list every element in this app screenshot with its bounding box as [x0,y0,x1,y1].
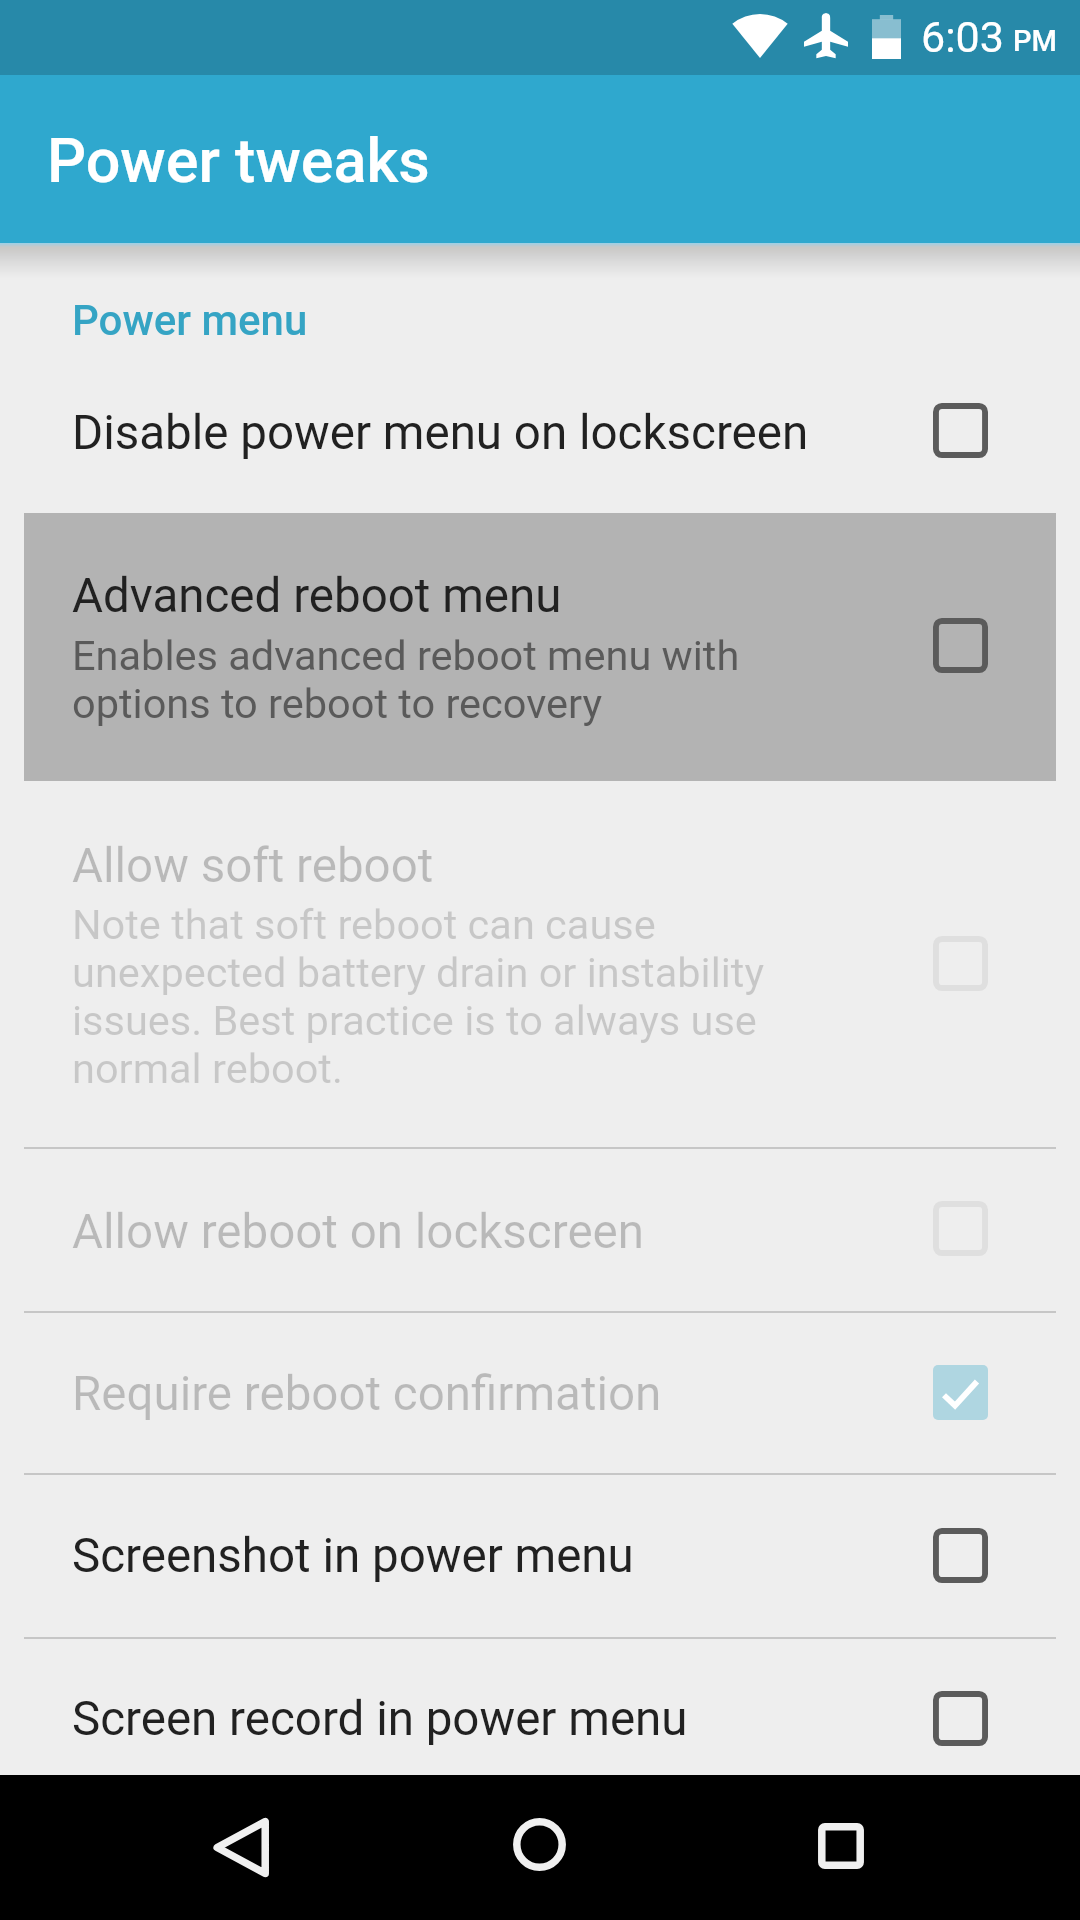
button[interactable] [0,1313,1080,1473]
button[interactable]: Home [473,1772,605,1917]
button[interactable]: Unchecked [912,915,1008,1011]
button[interactable]: Back [176,1775,308,1920]
button[interactable] [0,1639,1080,1785]
staticText: Disable power menu on lockscreen [72,405,932,461]
button[interactable] [0,790,1080,1145]
staticText: PM [1013,24,1057,58]
staticText: Allow soft reboot [72,838,932,894]
staticText: Note that soft reboot can cause unexpect… [72,901,932,1093]
staticText: Screenshot in power menu [72,1528,932,1584]
button[interactable]: Unchecked [912,1180,1008,1276]
button[interactable]: Unchecked [912,1670,1008,1766]
button[interactable]: Recent apps [775,1773,907,1918]
staticText: Enables advanced reboot menu with option… [72,632,932,728]
staticText: Power menu [72,296,308,345]
button[interactable]: Unchecked [912,1507,1008,1603]
button[interactable]: Unchecked [912,382,1008,478]
button[interactable]: Checked [912,1344,1008,1440]
button[interactable] [0,1149,1080,1311]
staticText: Require reboot confirmation [72,1366,932,1422]
button[interactable] [0,1475,1080,1637]
staticText: 6:03 [921,12,1004,62]
staticText: Advanced reboot menu [72,568,932,624]
button[interactable] [0,513,1080,781]
staticText: Allow reboot on lockscreen [72,1204,932,1260]
button[interactable] [0,366,1080,511]
button[interactable]: Unchecked [912,597,1008,693]
staticText: Screen record in power menu [72,1691,932,1747]
staticText: Power tweaks [47,125,430,196]
